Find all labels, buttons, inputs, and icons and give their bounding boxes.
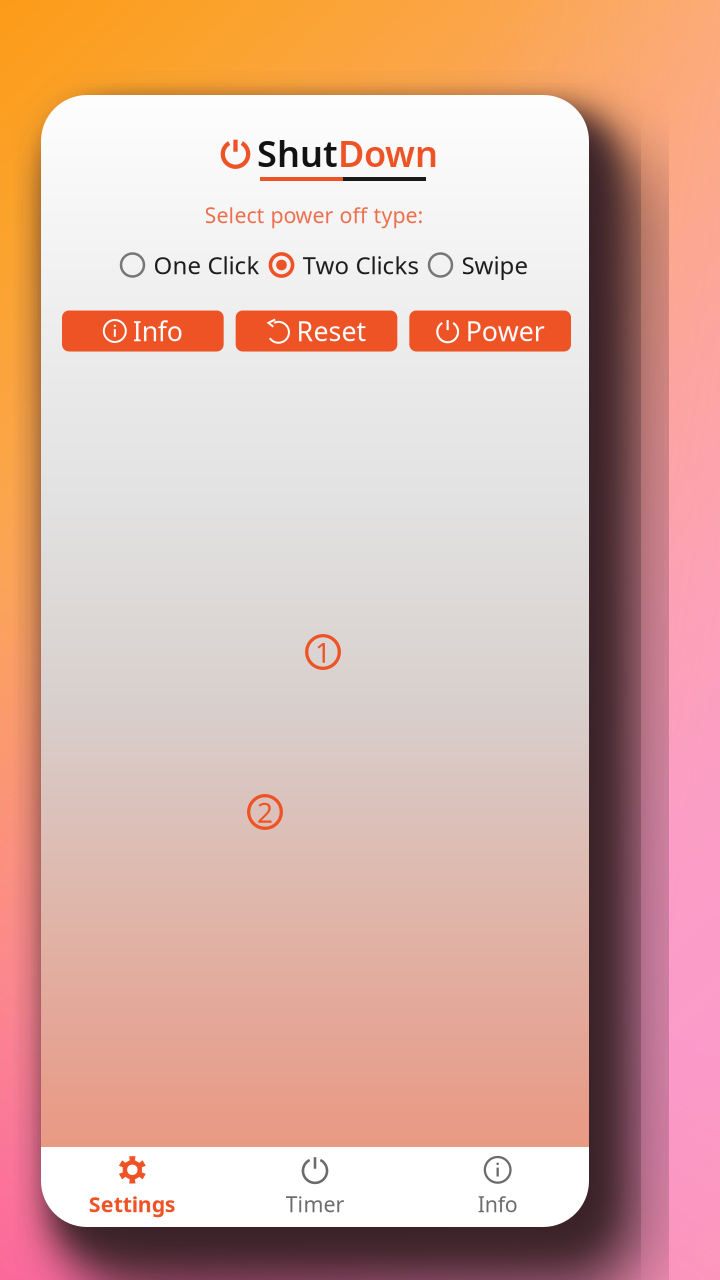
button[interactable]: Reset	[236, 310, 397, 351]
button[interactable]: One Click	[119, 249, 259, 281]
button[interactable]: Info	[62, 310, 224, 351]
staticText: 2	[257, 793, 273, 831]
staticText: Settings	[89, 1190, 176, 1218]
staticText: Timer	[285, 1190, 344, 1218]
staticText: Swipe	[461, 249, 528, 281]
staticText: Shut	[257, 129, 338, 177]
staticText: Power	[466, 313, 545, 349]
button[interactable]: Two Clicks	[268, 249, 418, 281]
staticText: Down	[338, 129, 438, 177]
button[interactable]: Settings	[41, 1147, 224, 1227]
button[interactable]: Timer	[224, 1147, 406, 1227]
staticText: 1	[315, 633, 331, 671]
staticText: Two Clicks	[302, 249, 418, 281]
staticText: Reset	[296, 313, 366, 349]
button[interactable]: Power	[409, 310, 571, 351]
staticText: Info	[478, 1190, 518, 1218]
button[interactable]: Info	[406, 1147, 589, 1227]
staticText: One Click	[153, 249, 259, 281]
staticText: Select power off type:	[204, 201, 423, 229]
button[interactable]: Swipe	[427, 249, 528, 281]
staticText: Info	[133, 313, 183, 349]
